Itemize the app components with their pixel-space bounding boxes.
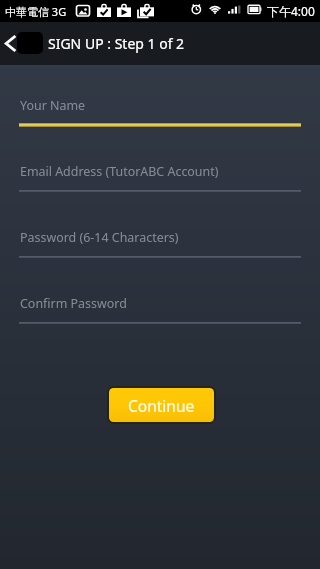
other: Notifications <box>76 4 154 18</box>
staticText: 中華電信 3G <box>5 4 67 19</box>
staticText: SIGN UP : Step 1 of 2 <box>48 34 185 53</box>
staticText: Continue <box>128 395 195 416</box>
other: System status <box>191 3 261 19</box>
button[interactable]: Back <box>0 22 20 65</box>
button[interactable]: Email Address (TutorABC Account) <box>0 161 320 201</box>
button[interactable]: Password (6-14 Characters) <box>0 227 320 267</box>
staticText: Your Name <box>20 97 86 114</box>
button[interactable]: Continue <box>107 386 216 424</box>
button[interactable]: Your Name <box>0 95 320 135</box>
staticText: Email Address (TutorABC Account) <box>20 163 219 180</box>
button[interactable]: Confirm Password <box>0 293 320 333</box>
staticText: Password (6-14 Characters) <box>20 229 179 246</box>
staticText: 下午4:00 <box>267 3 315 19</box>
button[interactable]: App logo <box>17 32 43 54</box>
staticText: Confirm Password <box>20 295 127 312</box>
